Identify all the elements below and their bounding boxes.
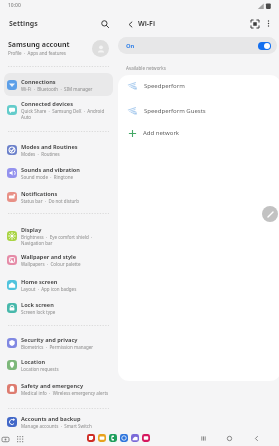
- button[interactable]: Add network: [118, 122, 276, 144]
- staticText: Status bar · Do not disturb: [21, 198, 79, 204]
- button[interactable]: Speedperform Guests: [118, 100, 279, 122]
- button[interactable]: Sounds and vibration: [4, 161, 113, 184]
- staticText: Add network: [143, 129, 180, 137]
- staticText: Sound mode · Ringtone: [21, 174, 73, 180]
- button[interactable]: Safety and emergency: [4, 377, 113, 400]
- button[interactable]: Edit: [262, 206, 278, 222]
- button[interactable]: Connections: [4, 73, 113, 96]
- staticText: Wi-Fi: [138, 19, 156, 29]
- staticText: Sounds and vibration: [21, 166, 80, 174]
- button[interactable]: Phone: [109, 434, 117, 442]
- staticText: Settings: [9, 19, 38, 29]
- staticText: Brightness · Eye comfort shield · Naviga…: [21, 234, 93, 246]
- staticText: Connected devices: [21, 100, 74, 108]
- button[interactable]: Security and privacy: [4, 331, 113, 354]
- button[interactable]: Gallery: [131, 434, 139, 442]
- button[interactable]: All apps: [14, 433, 25, 444]
- staticText: Manage accounts · Smart Switch: [21, 423, 92, 429]
- staticText: Wi-Fi · Bluetooth · SIM manager: [21, 86, 93, 92]
- staticText: Quick Share · Samsung DeX · Android Auto: [21, 108, 105, 120]
- staticText: Available networks: [126, 65, 166, 71]
- button[interactable]: Back: [124, 18, 136, 30]
- staticText: Speedperform Guests: [144, 107, 206, 115]
- staticText: Medical info · Wireless emergency alerts: [21, 390, 109, 396]
- button[interactable]: Recents: [199, 434, 208, 443]
- staticText: Location: [21, 358, 46, 366]
- button[interactable]: Internet: [120, 434, 128, 442]
- staticText: 10:00: [8, 2, 21, 9]
- staticText: Modes · Routines: [21, 151, 60, 157]
- button[interactable]: Speedperform: [118, 75, 279, 97]
- button[interactable]: Messages: [87, 434, 95, 442]
- button[interactable]: On: [118, 37, 277, 54]
- button[interactable]: Samsung account: [8, 37, 109, 59]
- button[interactable]: My Files: [98, 434, 106, 442]
- staticText: Location requests: [21, 366, 59, 372]
- button[interactable]: Home: [225, 434, 234, 443]
- button[interactable]: Scan QR code: [248, 17, 261, 30]
- staticText: Samsung account: [8, 40, 70, 50]
- staticText: Connections: [21, 78, 56, 86]
- button[interactable]: Accounts and backup: [4, 410, 113, 433]
- button[interactable]: Search: [98, 17, 112, 31]
- staticText: Wallpapers · Colour palette: [21, 261, 81, 267]
- staticText: Notifications: [21, 190, 58, 198]
- button[interactable]: Recent apps: [0, 434, 11, 445]
- staticText: Biometrics · Permission manager: [21, 344, 94, 350]
- button[interactable]: Camera: [142, 434, 150, 442]
- button[interactable]: Wallpaper and style: [4, 248, 113, 271]
- staticText: Modes and Routines: [21, 143, 78, 151]
- staticText: On: [126, 42, 135, 50]
- button[interactable]: Connected devices: [4, 97, 113, 122]
- button[interactable]: Notifications: [4, 185, 113, 208]
- staticText: Wallpaper and style: [21, 253, 77, 261]
- staticText: Profile · Apps and features: [8, 50, 66, 56]
- staticText: Security and privacy: [21, 336, 78, 344]
- button[interactable]: More options: [263, 18, 274, 29]
- button[interactable]: Location: [4, 353, 113, 376]
- staticText: Display: [21, 226, 42, 234]
- staticText: Screen lock type: [21, 309, 56, 315]
- button[interactable]: Lock screen: [4, 296, 113, 319]
- staticText: Accounts and backup: [21, 415, 81, 423]
- staticText: Layout · App icon badges: [21, 286, 77, 292]
- button[interactable]: Display: [4, 223, 113, 248]
- staticText: Lock screen: [21, 301, 54, 309]
- staticText: Speedperform: [144, 82, 185, 90]
- button[interactable]: Modes and Routines: [4, 138, 113, 161]
- staticText: Home screen: [21, 278, 58, 286]
- button[interactable]: Back: [252, 434, 261, 443]
- staticText: Safety and emergency: [21, 382, 84, 390]
- button[interactable]: Home screen: [4, 273, 113, 296]
